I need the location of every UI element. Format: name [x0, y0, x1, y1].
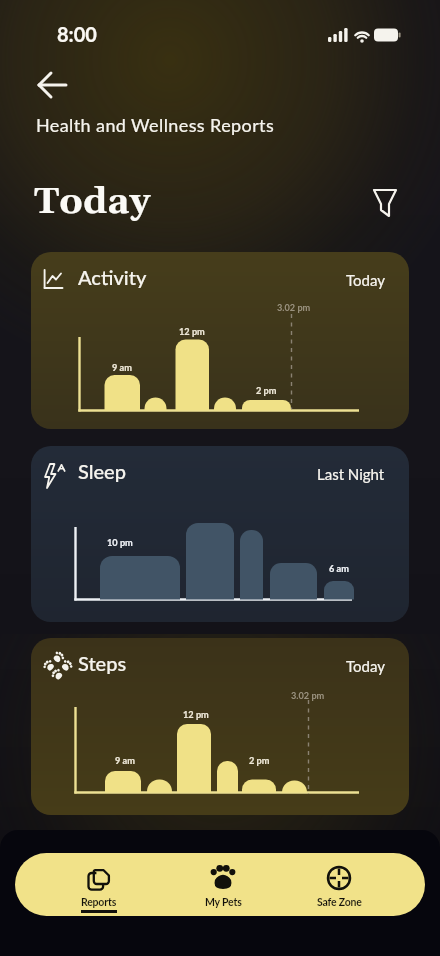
- staticText: 6 am: [329, 563, 349, 574]
- staticText: 2 pm: [249, 755, 270, 766]
- staticText: My Pets: [205, 896, 242, 909]
- staticText: 8:00: [57, 22, 97, 46]
- staticText: Health and Wellness Reports: [36, 114, 275, 136]
- staticText: Today: [34, 179, 151, 226]
- staticText: 3.02 pm: [291, 690, 325, 701]
- staticText: 2 pm: [256, 385, 277, 396]
- button[interactable]: [28, 62, 74, 106]
- staticText: 12 pm: [183, 709, 209, 720]
- staticText: Reports: [81, 896, 117, 909]
- button[interactable]: Steps: [31, 638, 409, 815]
- staticText: Steps: [78, 651, 127, 675]
- staticText: Sleep: [78, 459, 126, 483]
- staticText: 3.02 pm: [277, 302, 311, 313]
- button[interactable]: Reports: [54, 859, 144, 913]
- button[interactable]: Sleep: [31, 446, 409, 622]
- staticText: Today: [346, 657, 385, 675]
- staticText: 10 pm: [107, 537, 133, 548]
- button[interactable]: Safe Zone: [294, 859, 384, 913]
- button[interactable]: [364, 180, 406, 224]
- staticText: 9 am: [112, 362, 132, 373]
- staticText: Safe Zone: [317, 896, 362, 909]
- button[interactable]: My Pets: [178, 859, 268, 913]
- staticText: Activity: [78, 265, 147, 289]
- staticText: Last Night: [317, 465, 385, 483]
- staticText: 12 pm: [179, 326, 205, 337]
- staticText: 9 am: [115, 755, 135, 766]
- staticText: Today: [346, 271, 385, 289]
- button[interactable]: Activity: [31, 252, 409, 429]
